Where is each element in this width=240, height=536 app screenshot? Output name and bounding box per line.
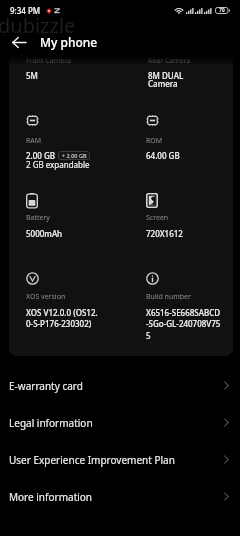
staticText: 720X1612 (146, 228, 183, 239)
staticText: User Experience Improvement Plan (9, 453, 175, 467)
staticText: 5M (26, 70, 38, 81)
button[interactable]: E-warranty card (0, 367, 240, 404)
staticText: 70 (219, 7, 225, 14)
staticText: Screen (146, 213, 169, 223)
staticText: E-warranty card (9, 379, 83, 393)
staticText: My phone (40, 34, 98, 50)
staticText: Battery (26, 213, 50, 223)
staticText: 5000mAh (26, 228, 63, 239)
button[interactable]: Legal information (0, 404, 240, 441)
staticText: Front Camera (26, 56, 71, 66)
button[interactable]: User Experience Improvement Plan (0, 441, 240, 478)
staticText: 64.00 GB (146, 150, 180, 161)
button[interactable]: Back (7, 30, 31, 54)
button[interactable]: More information (0, 478, 240, 515)
staticText: XOS version (26, 292, 66, 302)
staticText: X6516-SE668SABCD -SGo-GL-240708V75 5 (146, 307, 221, 342)
staticText: 9:34 PM (10, 5, 41, 16)
staticText: Legal information (9, 416, 93, 430)
staticText: + 2.00 GB (62, 152, 87, 159)
staticText: XOS V12.0.0 (OS12. 0-S-P176-230302) (26, 307, 98, 330)
staticText: ROM (146, 136, 163, 146)
staticText: More information (9, 490, 93, 504)
staticText: RAM (26, 136, 42, 146)
staticText: 2 GB expandable (26, 159, 90, 170)
staticText: 8M DUAL Camera (148, 70, 184, 89)
staticText: dubizzle (0, 12, 76, 39)
staticText: 2.00 GB (26, 150, 56, 161)
staticText: Rear Camera (148, 56, 191, 66)
staticText: Build number (146, 292, 191, 302)
